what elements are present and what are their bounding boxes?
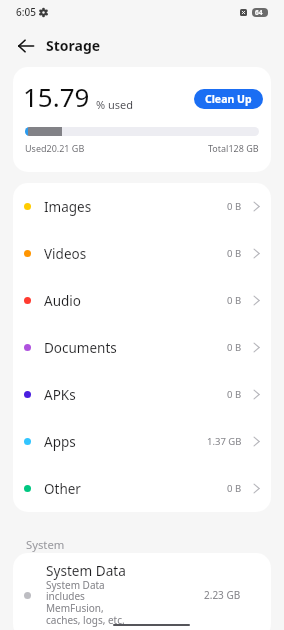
staticText: System Data — [46, 561, 126, 580]
staticText: 0 B — [227, 247, 242, 260]
button[interactable]: Back — [10, 30, 42, 62]
button[interactable]: Documents — [13, 324, 271, 371]
button[interactable]: System Data — [13, 553, 271, 630]
staticText: System Data includes MemFusion, caches, … — [46, 578, 128, 627]
staticText: Images — [44, 198, 92, 216]
staticText: System — [26, 537, 65, 552]
staticText: Clean Up — [205, 92, 252, 106]
staticText: APKs — [44, 386, 76, 404]
staticText: 15.79 — [23, 79, 90, 114]
staticText: 0 B — [227, 388, 242, 401]
button[interactable]: Audio — [13, 277, 271, 324]
button[interactable]: Other — [13, 465, 271, 512]
staticText: Apps — [44, 433, 76, 451]
staticText: Total128 GB — [208, 142, 259, 154]
staticText: Storage — [46, 36, 101, 55]
staticText: Videos — [44, 245, 87, 263]
staticText: Used20.21 GB — [25, 142, 85, 154]
button[interactable]: Images — [13, 183, 271, 230]
button[interactable]: Videos — [13, 230, 271, 277]
staticText: 0 B — [227, 482, 242, 495]
staticText: 0 B — [227, 341, 242, 354]
button[interactable]: Clean Up — [194, 89, 263, 109]
staticText: 2.23 GB — [204, 588, 241, 602]
staticText: Other — [44, 480, 81, 498]
button[interactable]: APKs — [13, 371, 271, 418]
staticText: 64 — [255, 8, 263, 17]
staticText: 0 B — [227, 294, 242, 307]
staticText: 1.37 GB — [207, 435, 242, 448]
staticText: Audio — [44, 292, 81, 310]
staticText: 6:05 — [16, 5, 36, 19]
staticText: 0 B — [227, 200, 242, 213]
staticText: Documents — [44, 339, 117, 357]
staticText: % used — [96, 97, 134, 112]
button[interactable]: Apps — [13, 418, 271, 465]
